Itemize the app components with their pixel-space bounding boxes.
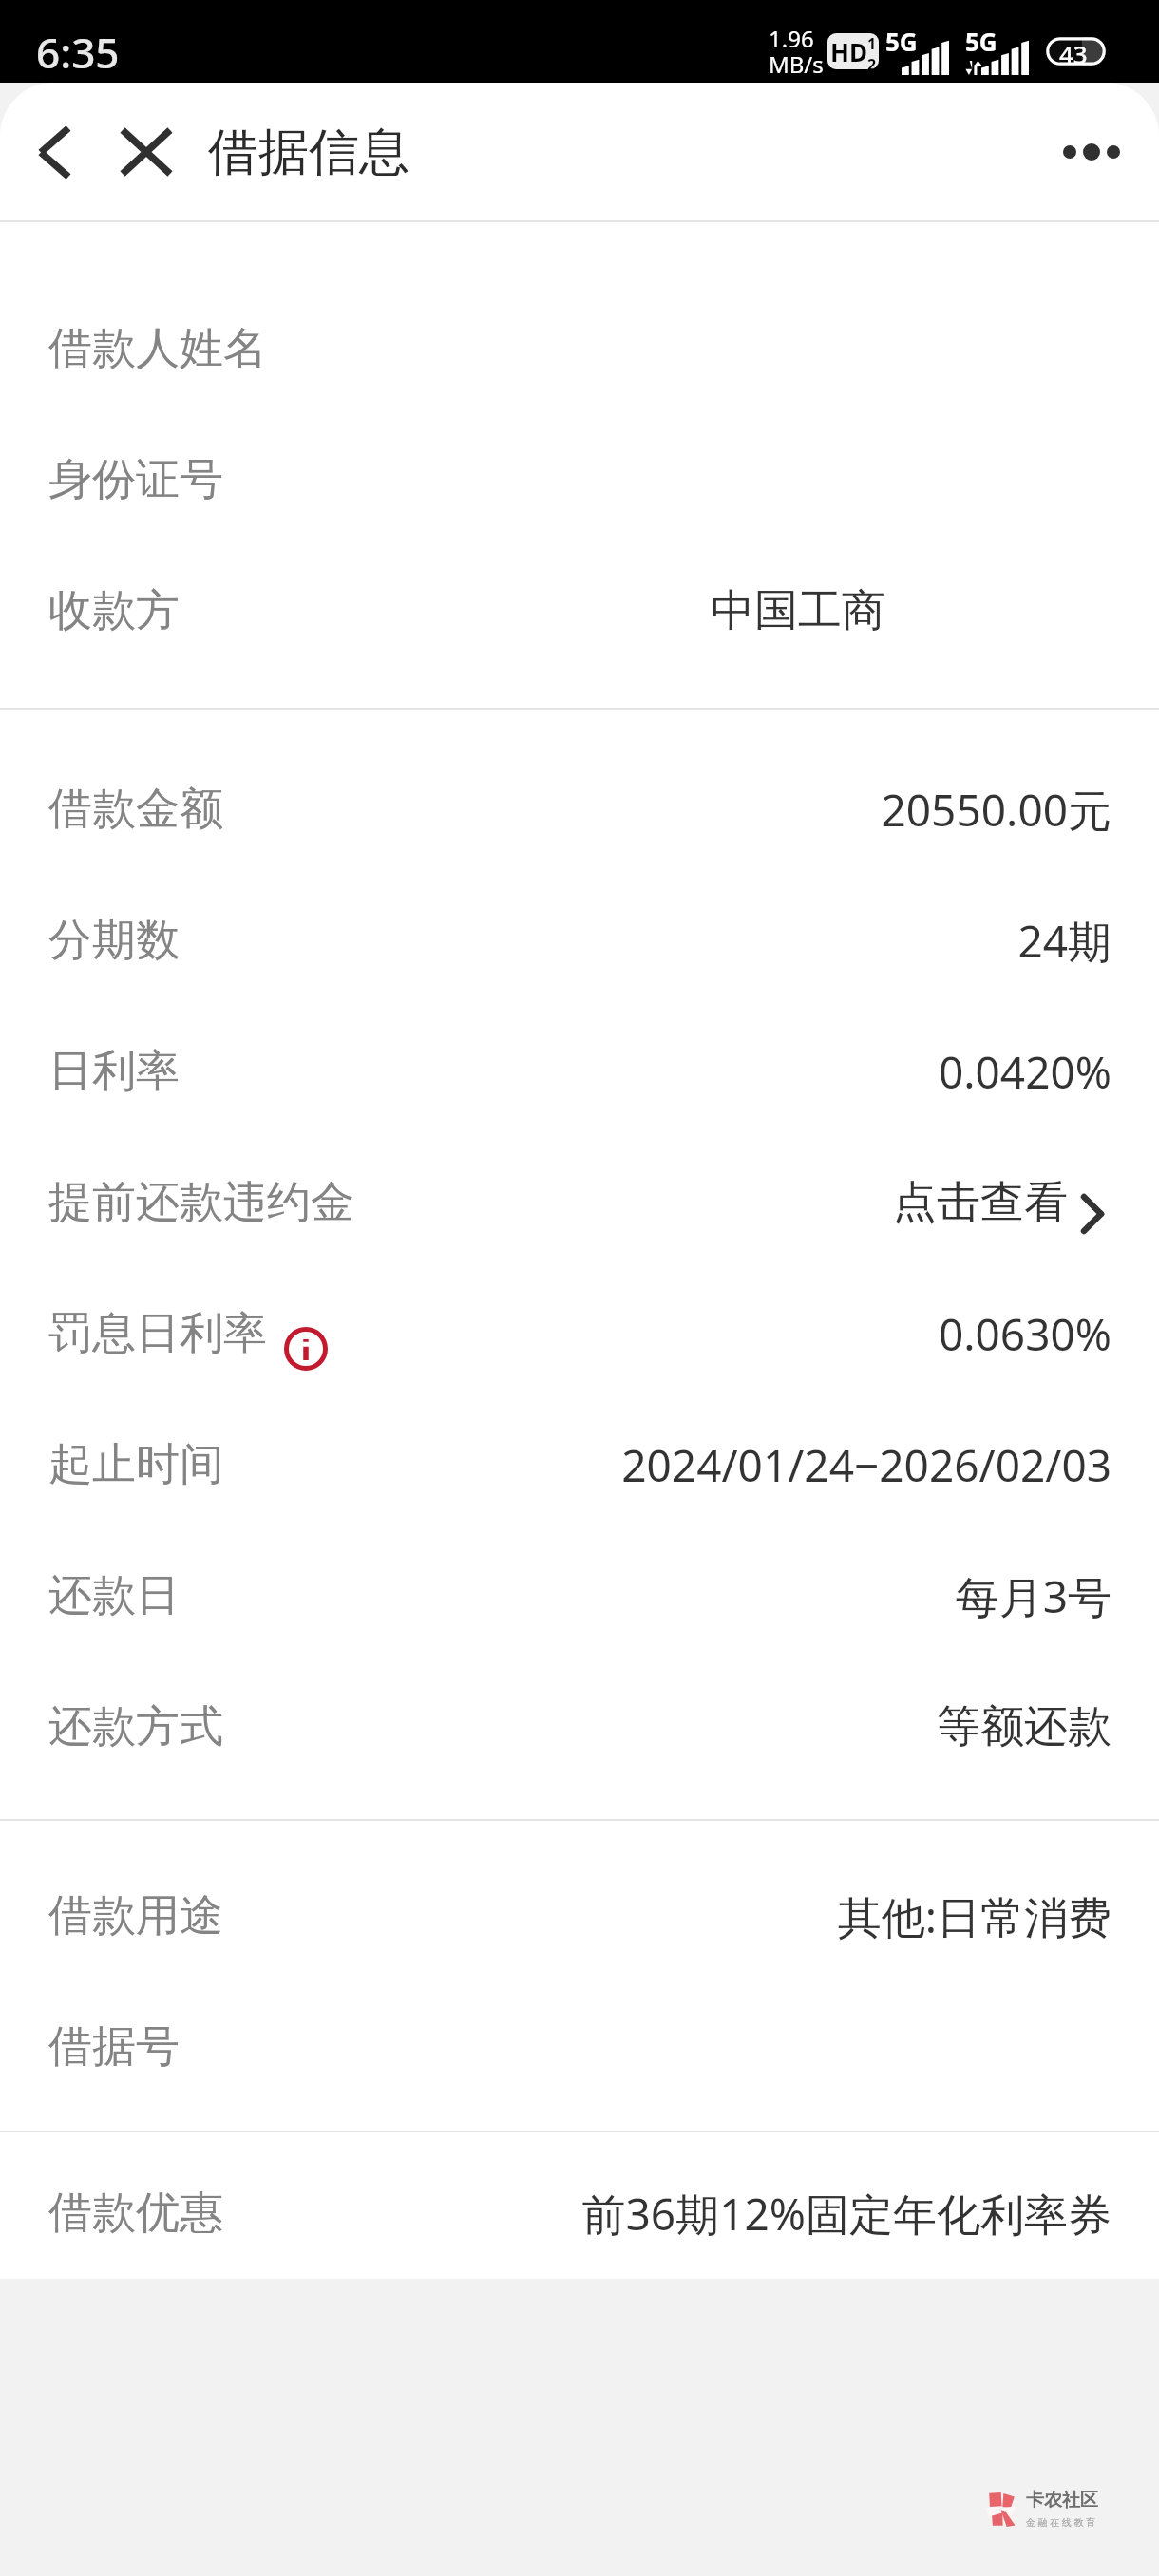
staticText: 前36期12%固定年化利率券 [581, 2184, 1111, 2244]
staticText: 借据号 [48, 2019, 180, 2074]
staticText: 1.96 [769, 23, 814, 54]
staticText: 身份证号 [48, 452, 223, 507]
staticText: 点击查看 [893, 1175, 1068, 1230]
staticText: 借据信息 [208, 121, 409, 184]
staticText: 其他:日常消费 [837, 1886, 1111, 1946]
button[interactable]: 提前还款违约金 [0, 1137, 1159, 1268]
staticText: 43 [1059, 37, 1088, 66]
staticText: 金 融 在 线 教 育 [1026, 2515, 1095, 2529]
staticText: 借款用途 [48, 1888, 223, 1943]
staticText: 还款方式 [48, 1699, 223, 1754]
button[interactable]: 日利率 [0, 1006, 1159, 1137]
button[interactable]: 借据号 [0, 1981, 1159, 2112]
button[interactable]: More options [1039, 100, 1144, 204]
button[interactable]: 借款金额 [0, 744, 1159, 875]
staticText: 1 [867, 33, 877, 54]
staticText: 提前还款违约金 [48, 1175, 354, 1230]
staticText: 等额还款 [937, 1699, 1111, 1754]
button[interactable]: 借款用途 [0, 1850, 1159, 1981]
staticText: 2 [867, 54, 877, 69]
button[interactable]: 还款日 [0, 1530, 1159, 1661]
staticText: 日利率 [48, 1044, 180, 1099]
staticText: 借款人姓名 [48, 321, 267, 376]
button[interactable]: Close [104, 109, 189, 195]
button[interactable]: 借款优惠 [0, 2148, 1159, 2279]
button[interactable]: 身份证号 [0, 414, 1159, 545]
button[interactable]: 收款方 [0, 545, 1159, 676]
button[interactable]: Back [11, 109, 97, 195]
staticText: 6:35 [36, 24, 120, 81]
staticText: 中国工商 [711, 583, 885, 638]
staticText: 5G [885, 25, 918, 58]
staticText: 每月3号 [955, 1566, 1111, 1626]
staticText: 2024/01/24−2026/02/03 [621, 1435, 1111, 1495]
staticText: 借款金额 [48, 782, 223, 837]
staticText: 起止时间 [48, 1437, 223, 1492]
staticText: MB/s [769, 48, 824, 80]
staticText: 分期数 [48, 913, 180, 968]
button[interactable]: 起止时间 [0, 1399, 1159, 1530]
staticText: 卡农社区 [1026, 2489, 1098, 2511]
staticText: 还款日 [48, 1568, 180, 1623]
button[interactable]: 还款方式 [0, 1661, 1159, 1792]
button[interactable]: 分期数 [0, 875, 1159, 1006]
staticText: 0.0630% [938, 1304, 1111, 1364]
button[interactable]: 借款人姓名 [0, 283, 1159, 414]
button[interactable]: 罚息日利率 [0, 1268, 1159, 1399]
staticText: 罚息日利率 [48, 1306, 267, 1361]
staticText: 借款优惠 [48, 2186, 223, 2241]
staticText: 0.0420% [938, 1042, 1111, 1102]
staticText: 24期 [1017, 911, 1111, 971]
staticText: 收款方 [48, 583, 180, 638]
staticText: 5G [965, 25, 997, 58]
staticText: 20550.00元 [881, 780, 1111, 840]
staticText: HD [830, 35, 867, 68]
